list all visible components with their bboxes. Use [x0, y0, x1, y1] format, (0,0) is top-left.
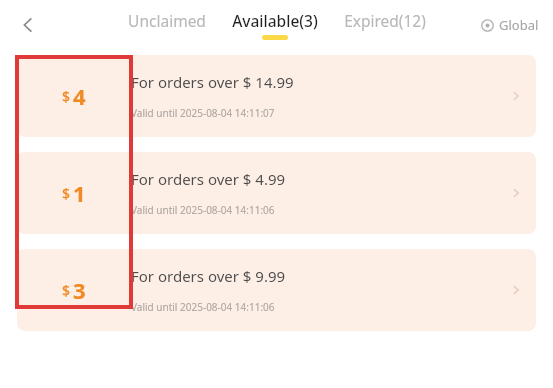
staticText: Valid until 2025-08-04 14:11:06	[131, 203, 275, 217]
button[interactable]: $	[17, 249, 536, 331]
staticText: $	[62, 184, 71, 203]
button[interactable]: Unclaimed	[122, 10, 212, 40]
staticText: Valid until 2025-08-04 14:11:07	[131, 106, 275, 120]
staticText: For orders over $ 14.99	[131, 72, 294, 92]
staticText: $	[62, 87, 71, 106]
staticText: For orders over $ 9.99	[131, 266, 286, 286]
staticText: For orders over $ 4.99	[131, 169, 286, 189]
staticText: Valid until 2025-08-04 14:11:06	[131, 300, 275, 314]
button[interactable]: Available(3)	[226, 10, 324, 40]
button[interactable]: Global	[477, 10, 543, 40]
staticText: Available(3)	[232, 10, 318, 31]
staticText: 3	[73, 275, 86, 305]
button[interactable]: Expired(12)	[338, 10, 432, 40]
staticText: Global	[499, 16, 539, 34]
button[interactable]: $	[17, 55, 536, 137]
button[interactable]: $	[17, 152, 536, 234]
staticText: 4	[73, 81, 86, 111]
staticText: 1	[73, 178, 86, 208]
button[interactable]: Back	[8, 5, 48, 45]
staticText: $	[62, 281, 71, 300]
staticText: Expired(12)	[344, 10, 426, 31]
staticText: Unclaimed	[128, 10, 206, 31]
